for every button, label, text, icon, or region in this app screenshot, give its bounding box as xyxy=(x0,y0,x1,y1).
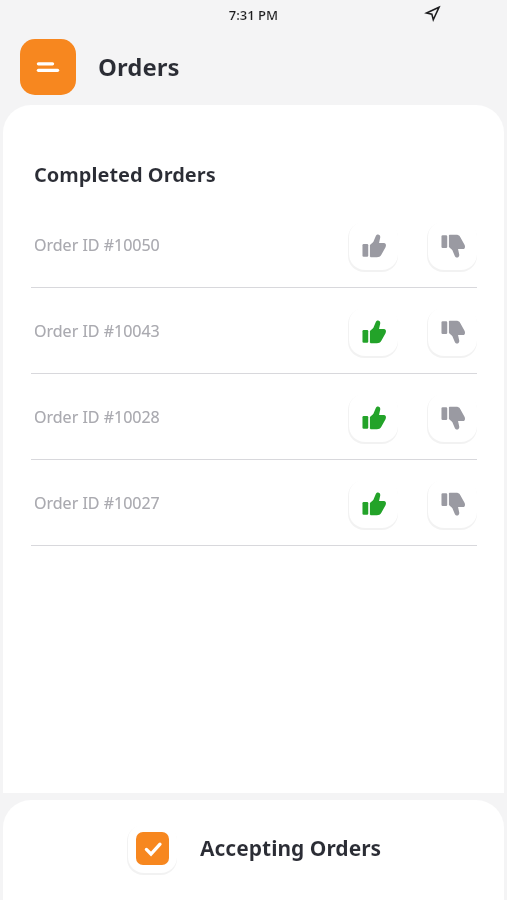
staticText: Completed Orders xyxy=(34,161,216,188)
staticText: Order ID #10028 xyxy=(34,406,160,428)
button[interactable]: Order ID #10050 xyxy=(3,202,504,287)
button[interactable]: Thumbs up Order ID #10043 xyxy=(347,305,399,357)
button[interactable]: Order ID #10028 xyxy=(3,374,504,459)
staticText: 7:31 PM xyxy=(0,6,507,24)
button[interactable]: Thumbs up Order ID #10027 xyxy=(347,477,399,529)
button[interactable]: Thumbs up Order ID #10050 xyxy=(347,219,399,271)
button[interactable]: Thumbs down Order ID #10027 xyxy=(426,477,478,529)
button[interactable]: Accepting Orders xyxy=(126,822,382,874)
staticText: Accepting Orders xyxy=(200,834,382,863)
button[interactable]: Order ID #10043 xyxy=(3,288,504,373)
staticText: Orders xyxy=(98,50,180,83)
button[interactable]: Thumbs down Order ID #10028 xyxy=(426,391,478,443)
button[interactable]: Thumbs down Order ID #10043 xyxy=(426,305,478,357)
button[interactable]: Thumbs up Order ID #10028 xyxy=(347,391,399,443)
staticText: Order ID #10043 xyxy=(34,320,160,342)
button[interactable]: Order ID #10027 xyxy=(3,460,504,545)
staticText: Order ID #10027 xyxy=(34,492,160,514)
button[interactable]: Open navigation menu xyxy=(20,39,76,95)
staticText: Order ID #10050 xyxy=(34,234,160,256)
button[interactable]: Thumbs down Order ID #10050 xyxy=(426,219,478,271)
